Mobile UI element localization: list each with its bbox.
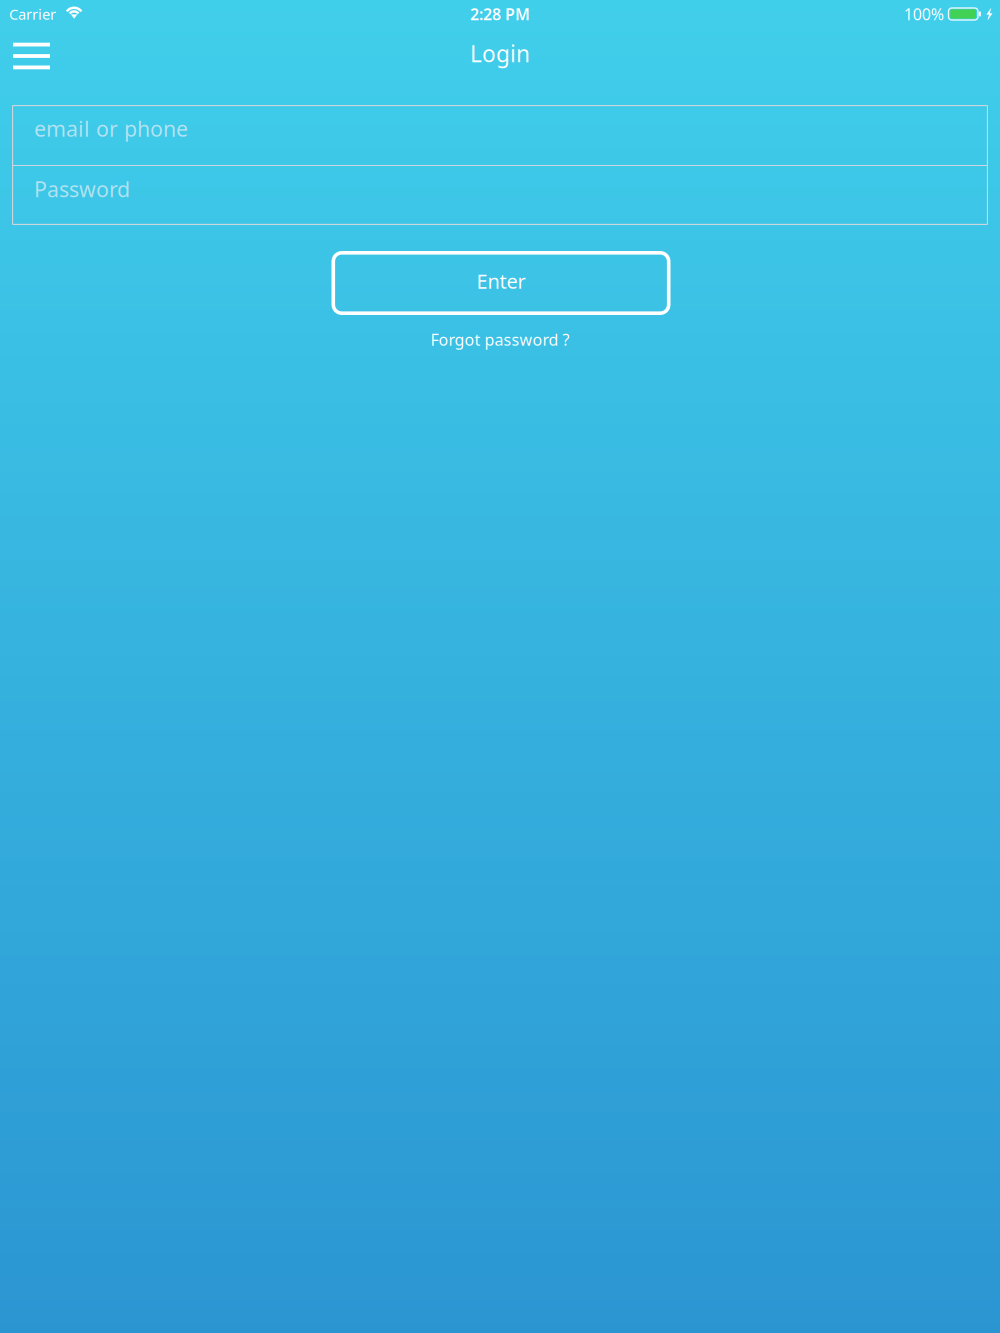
staticText: Carrier [9,4,56,24]
staticText: 100% [904,3,944,25]
button[interactable]: email or phone [12,105,988,165]
button[interactable]: Forgot password ? [418,324,581,355]
staticText: Password [34,175,130,203]
button[interactable]: Enter [328,249,671,317]
staticText: Forgot password ? [430,329,569,350]
staticText: Enter [476,268,525,294]
staticText: Login [470,38,530,68]
button[interactable]: Menu [0,28,68,79]
button[interactable]: Password [12,166,988,225]
staticText: 2:28 PM [470,3,530,25]
staticText: email or phone [34,114,188,143]
